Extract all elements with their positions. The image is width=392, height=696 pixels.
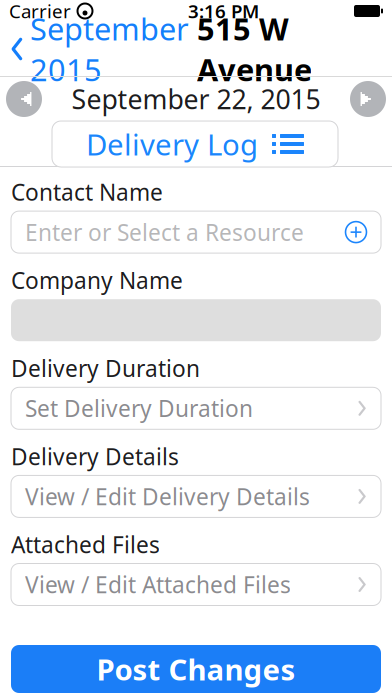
staticText: Contact Name [11,177,163,207]
staticText: 515 W Avenue [197,8,312,90]
staticText: Delivery Duration [11,353,200,383]
staticText: September 2015 [30,8,189,90]
button[interactable]: View / Edit Delivery Details [11,475,381,517]
staticText: Post Changes [96,649,295,688]
staticText: View / Edit Delivery Details [25,481,310,511]
staticText: Set Delivery Duration [25,393,253,423]
staticText: Company Name [11,265,183,295]
staticText: 3:16 PM [188,0,259,23]
staticText: Delivery Log [86,124,258,163]
button[interactable]: Delivery Log [52,121,338,167]
staticText: September 22, 2015 [71,81,320,117]
staticText: View / Edit Attached Files [25,569,291,600]
button[interactable]: Post Changes [11,645,381,693]
button[interactable]: View / Edit Attached Files [11,563,381,605]
button[interactable]: Enter or Select a Resource [11,211,381,253]
button[interactable]: Previous day [0,79,42,119]
staticText: Enter or Select a Resource [25,217,304,247]
staticText: Carrier [9,0,71,23]
staticText: Delivery Details [11,441,179,471]
staticText: Attached Files [11,529,160,559]
button[interactable]: September 2015 [0,2,189,96]
button[interactable]: Next day [350,79,392,119]
button[interactable]: Set Delivery Duration [11,387,381,429]
